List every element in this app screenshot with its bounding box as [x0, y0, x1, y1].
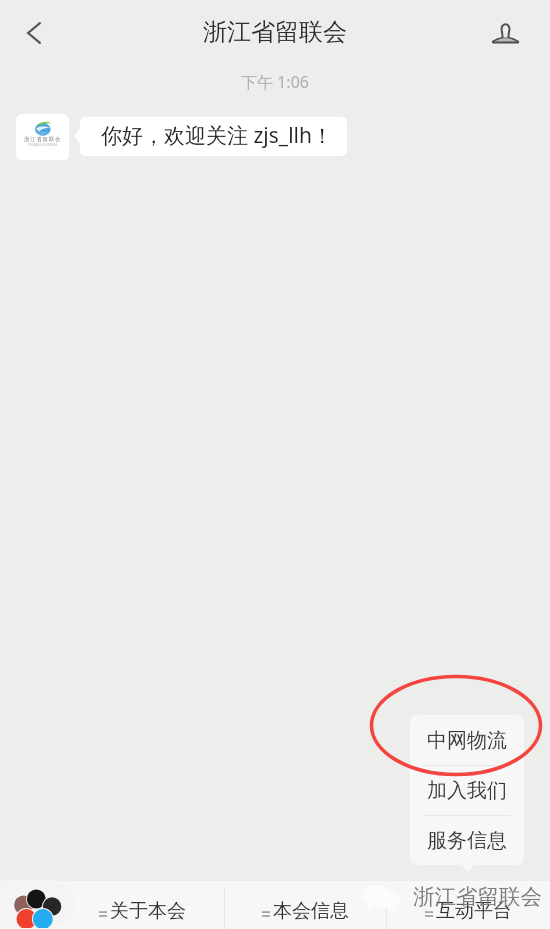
staticText: 服务信息 — [427, 828, 507, 853]
staticText: 浙江省留联会 — [413, 883, 542, 910]
button[interactable]: 服务信息 — [410, 816, 524, 865]
staticText: ZHEJIANG OVERSEAS — [28, 143, 58, 147]
button[interactable]: Back — [10, 9, 58, 57]
staticText: 本会信息 — [273, 899, 349, 923]
button[interactable]: Switch keyboard — [0, 887, 60, 929]
button[interactable]: 关于本会 — [60, 887, 224, 929]
staticText: 浙江省留联会 — [203, 17, 347, 47]
button[interactable]: Switch keyboard input — [0, 880, 74, 928]
button[interactable]: Avatar — [16, 114, 69, 160]
button[interactable]: 互动平台 — [387, 887, 550, 929]
button[interactable]: Contact profile — [481, 9, 529, 57]
button[interactable]: 本会信息 — [225, 887, 386, 929]
staticText: 加入我们 — [427, 778, 507, 803]
button[interactable]: 你好，欢迎关注 zjs_llh！ — [80, 117, 347, 156]
button[interactable]: 中网物流 — [410, 715, 524, 765]
staticText: 互动平台 — [436, 899, 512, 923]
staticText: 下午 1:06 — [0, 71, 550, 93]
staticText: 浙江省留联会 — [24, 136, 62, 143]
staticText: 关于本会 — [110, 899, 186, 923]
staticText: 中网物流 — [427, 728, 507, 753]
staticText: 你好，欢迎关注 zjs_llh！ — [101, 121, 333, 150]
button[interactable]: 加入我们 — [410, 766, 524, 815]
